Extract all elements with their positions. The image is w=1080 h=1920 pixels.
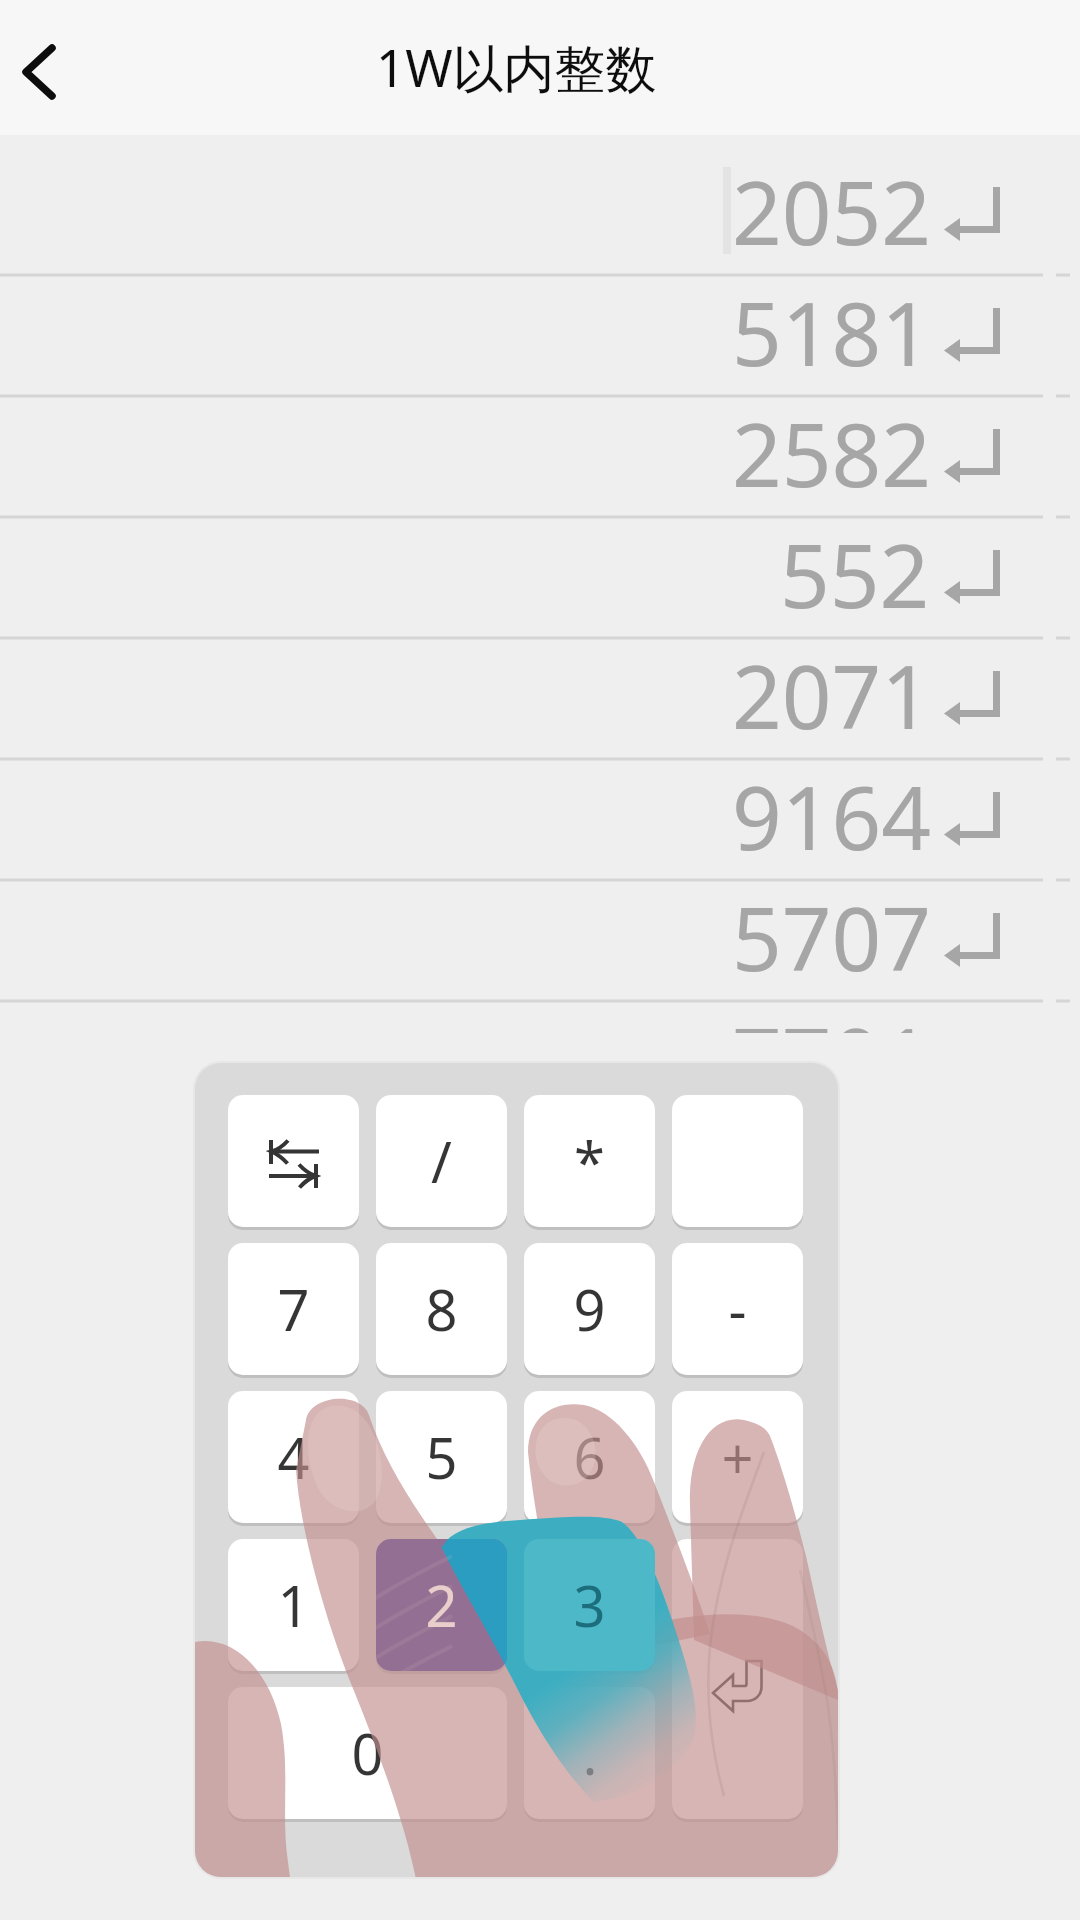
staticText: 1W以内整数	[376, 32, 657, 102]
button[interactable]	[672, 1539, 803, 1819]
button[interactable]: 2	[376, 1539, 507, 1671]
staticText: 0	[351, 1715, 384, 1791]
button[interactable]: 1	[228, 1539, 359, 1671]
staticText: 8	[425, 1271, 458, 1347]
staticText: 9164	[732, 757, 932, 875]
staticText: 2052	[732, 152, 932, 270]
staticText: *	[574, 1123, 605, 1199]
button[interactable]: 4	[228, 1391, 359, 1523]
button[interactable]: -	[672, 1243, 803, 1375]
staticText: 7701	[732, 999, 932, 1033]
button[interactable]: 5	[376, 1391, 507, 1523]
staticText: 6	[573, 1419, 606, 1495]
button[interactable]	[524, 1539, 655, 1671]
staticText: 2	[425, 1567, 458, 1643]
button[interactable]: 9	[524, 1243, 655, 1375]
staticText: 9	[573, 1271, 606, 1347]
staticText: 7	[277, 1271, 310, 1347]
button[interactable]: 6	[524, 1391, 655, 1523]
button[interactable]: /	[376, 1095, 507, 1227]
staticText: 3	[573, 1567, 606, 1643]
button[interactable]: 7	[228, 1243, 359, 1375]
staticText: 5	[425, 1419, 458, 1495]
staticText: 2071	[732, 636, 932, 754]
staticText: 552	[780, 515, 930, 633]
staticText: 5707	[732, 878, 932, 996]
button[interactable]	[672, 1095, 803, 1227]
staticText: 4	[277, 1419, 310, 1495]
staticText: 1	[277, 1567, 310, 1643]
staticText: 5181	[732, 273, 932, 391]
button[interactable]: 3	[524, 1539, 655, 1671]
button[interactable]	[376, 1539, 507, 1671]
button[interactable]: Back	[0, 0, 110, 135]
staticText: .	[582, 1715, 598, 1791]
staticText: /	[431, 1123, 452, 1199]
staticText: +	[721, 1419, 754, 1495]
button[interactable]: *	[524, 1095, 655, 1227]
staticText: 2582	[732, 394, 932, 512]
staticText: -	[728, 1271, 747, 1347]
button[interactable]: 0	[228, 1687, 507, 1819]
button[interactable]: .	[524, 1687, 655, 1819]
button[interactable]: +	[672, 1391, 803, 1523]
button[interactable]: 8	[376, 1243, 507, 1375]
button[interactable]	[228, 1095, 359, 1227]
